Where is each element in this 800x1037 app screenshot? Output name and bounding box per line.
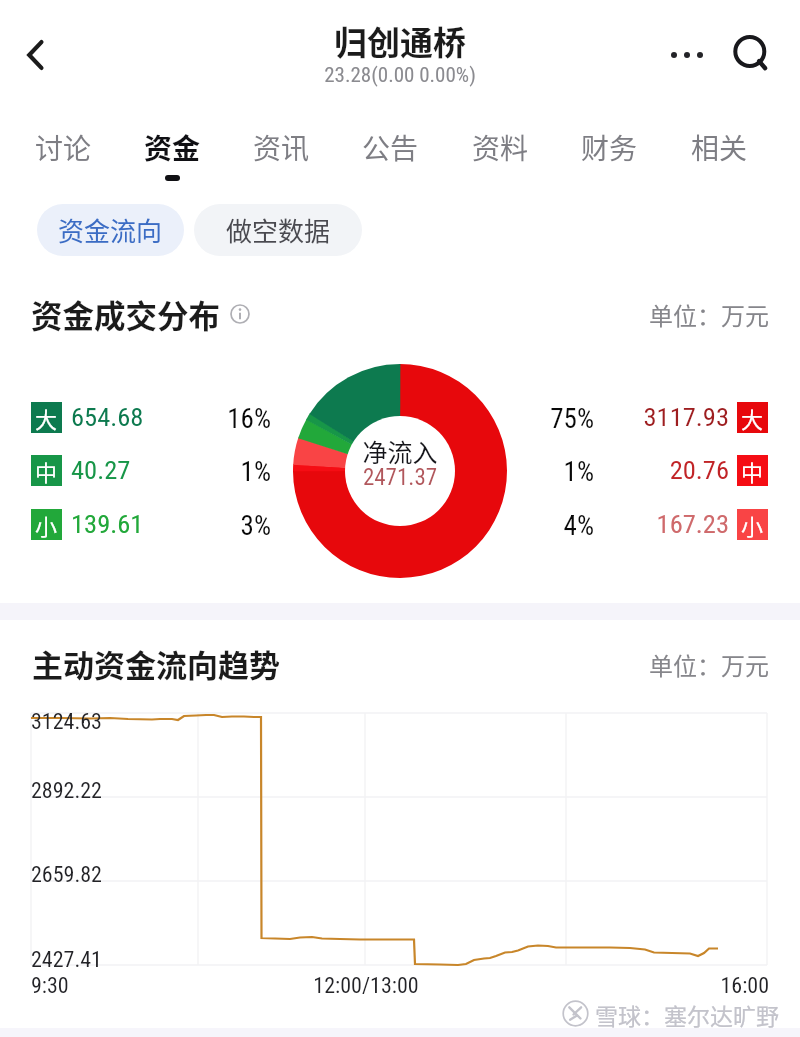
staticText: 20.76	[569, 454, 729, 485]
staticText: 资讯	[229, 127, 333, 168]
staticText: 资料	[448, 127, 552, 168]
staticText: 中	[741, 455, 764, 486]
staticText: 75%	[504, 403, 594, 435]
button[interactable]: More options	[659, 27, 715, 83]
staticText: 单位：万元	[569, 647, 769, 682]
staticText: 主动资金流向趋势	[32, 641, 312, 686]
staticText: 4%	[504, 510, 594, 542]
staticText: 雪球：塞尔达旷野	[595, 998, 800, 1031]
staticText: 公告	[338, 127, 442, 168]
staticText: 9:30	[31, 973, 191, 999]
staticText: 23.28(0.00 0.00%)	[250, 63, 550, 88]
staticText: 资金流向	[58, 211, 163, 249]
staticText: 单位：万元	[569, 297, 769, 332]
staticText: 讨论	[11, 127, 115, 168]
staticText: 小	[35, 509, 58, 540]
staticText: 大	[35, 402, 58, 433]
staticText: 归创通桥	[250, 17, 550, 65]
staticText: 3124.63	[31, 709, 191, 735]
staticText: 资金	[120, 127, 224, 168]
staticText: 净流入	[320, 433, 480, 469]
button[interactable]: 资讯	[229, 120, 333, 186]
button[interactable]: Back	[8, 27, 64, 83]
button[interactable]: 资金流向	[37, 204, 184, 256]
button[interactable]: 讨论	[11, 120, 115, 186]
button[interactable]: 资料	[448, 120, 552, 186]
button[interactable]: 相关	[667, 120, 771, 186]
staticText: 资金成交分布	[31, 291, 251, 337]
staticText: 2892.22	[31, 778, 191, 804]
button[interactable]: 资金	[120, 120, 224, 186]
button[interactable]: Search	[722, 25, 782, 85]
staticText: 3%	[181, 510, 271, 542]
staticText: 16%	[181, 403, 271, 435]
staticText: 1%	[504, 456, 594, 488]
staticText: 3117.93	[569, 401, 729, 432]
staticText: 139.61	[71, 508, 231, 539]
staticText: 654.68	[71, 401, 231, 432]
button[interactable]: 做空数据	[194, 204, 362, 256]
staticText: 1%	[181, 456, 271, 488]
staticText: 做空数据	[226, 211, 331, 249]
staticText: 大	[741, 402, 764, 433]
button[interactable]: 公告	[338, 120, 442, 186]
staticText: 16:00	[609, 973, 769, 999]
staticText: 167.23	[569, 508, 729, 539]
staticText: 小	[741, 509, 764, 540]
staticText: 财务	[557, 127, 661, 168]
staticText: 中	[35, 455, 58, 486]
staticText: 相关	[667, 127, 771, 168]
staticText: 12:00/13:00	[256, 973, 476, 999]
staticText: 2427.41	[31, 947, 191, 973]
staticText: 2659.82	[31, 862, 191, 888]
staticText: 2471.37	[320, 464, 480, 491]
staticText: 40.27	[71, 454, 231, 485]
button[interactable]: 财务	[557, 120, 661, 186]
